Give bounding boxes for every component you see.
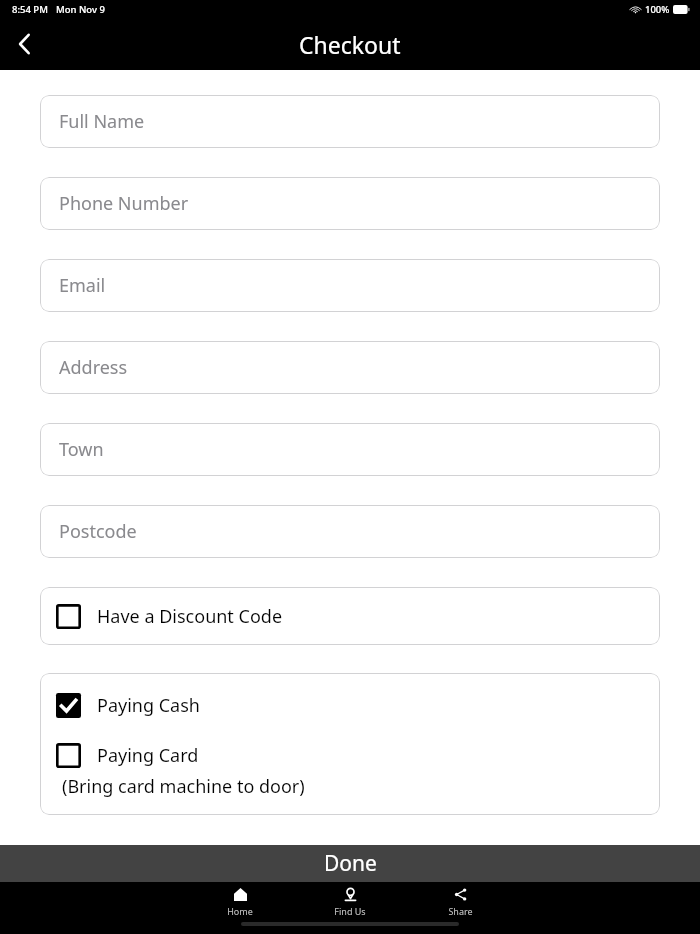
button[interactable]: Have a Discount Code (40, 587, 660, 645)
button[interactable]: Postcode (40, 505, 660, 558)
button[interactable]: Town (40, 423, 660, 476)
button[interactable]: Paying Card (40, 743, 660, 799)
staticText: Mon Nov 9 (56, 3, 105, 16)
button[interactable]: Find Us (295, 886, 405, 919)
button[interactable]: Done (0, 845, 700, 882)
button[interactable]: Back (0, 20, 48, 68)
staticText: Have a Discount Code (97, 604, 283, 629)
staticText: Address (59, 355, 128, 380)
staticText: Postcode (59, 519, 137, 544)
staticText: Checkout (299, 29, 401, 60)
staticText: Share (448, 905, 473, 917)
button[interactable]: Home (185, 886, 295, 919)
staticText: (Bring card machine to door) (62, 774, 305, 799)
staticText: Done (324, 849, 377, 878)
button[interactable]: Email (40, 259, 660, 312)
staticText: Full Name (59, 109, 145, 134)
staticText: Email (59, 273, 106, 298)
button[interactable]: Address (40, 341, 660, 394)
button[interactable]: Full Name (40, 95, 660, 148)
staticText: Paying Card (97, 743, 199, 768)
staticText: Home (227, 905, 253, 917)
button[interactable]: Paying Cash (40, 689, 660, 722)
staticText: Town (59, 437, 104, 462)
button[interactable]: Phone Number (40, 177, 660, 230)
staticText: Phone Number (59, 191, 189, 216)
staticText: 8:54 PM (12, 3, 48, 16)
staticText: Find Us (334, 905, 366, 917)
button[interactable]: Share (405, 886, 515, 919)
staticText: Paying Cash (97, 693, 200, 718)
staticText: 100% (645, 3, 670, 16)
